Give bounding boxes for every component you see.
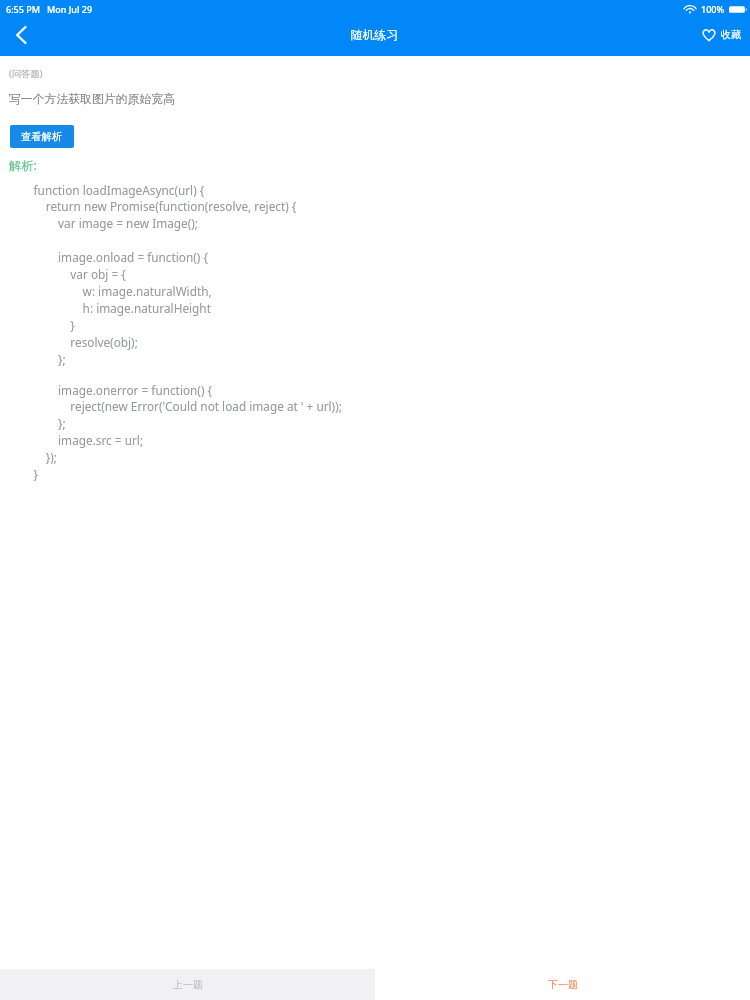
- staticText: 下一题: [548, 978, 578, 991]
- staticText: 查看解析: [21, 130, 63, 143]
- staticText: 随机练习: [351, 28, 399, 43]
- button[interactable]: 上一题: [0, 969, 375, 1000]
- staticText: 100%: [701, 3, 725, 15]
- button[interactable]: Back: [0, 18, 42, 52]
- staticText: 收藏: [721, 28, 741, 41]
- staticText: function loadImageAsync(url) { return ne…: [9, 182, 297, 368]
- staticText: Mon Jul 29: [47, 3, 93, 15]
- button[interactable]: 下一题: [375, 969, 750, 1000]
- staticText: 写一个方法获取图片的原始宽高: [9, 92, 175, 107]
- button[interactable]: 查看解析: [10, 125, 74, 148]
- staticText: (问答题): [9, 67, 43, 80]
- staticText: 解析:: [9, 157, 37, 174]
- button[interactable]: 收藏: [694, 21, 750, 48]
- staticText: 6:55 PM: [6, 3, 40, 15]
- staticText: 上一题: [173, 978, 203, 991]
- staticText: image.onerror = function() { reject(new …: [9, 382, 342, 483]
